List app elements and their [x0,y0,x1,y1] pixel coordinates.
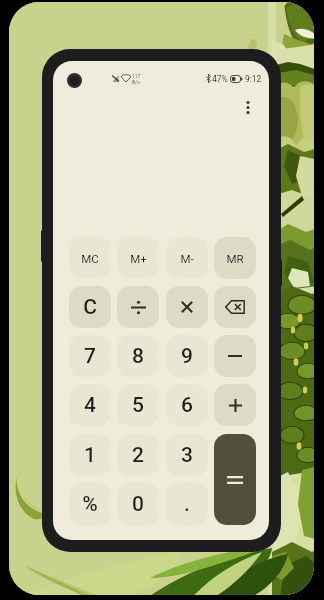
button[interactable]: % [69,483,111,525]
button[interactable]: MC [69,237,111,279]
button[interactable]: Backspace [214,286,256,328]
staticText: 117 [132,73,141,79]
staticText: 1 [84,443,96,468]
staticText: 47% [212,74,228,84]
button[interactable]: . [166,483,208,525]
staticText: 0 [132,492,144,517]
button[interactable]: 6 [166,384,208,426]
staticText: 8 [132,344,144,369]
staticText: 6 [181,393,193,418]
button[interactable]: 7 [69,335,111,377]
staticText: MC [81,252,99,265]
button[interactable]: 5 [117,384,159,426]
staticText: C [83,295,97,320]
staticText: B/s [132,79,140,85]
button[interactable]: 4 [69,384,111,426]
button[interactable]: 3 [166,434,208,476]
button[interactable] [214,335,256,377]
button[interactable]: C [69,286,111,328]
staticText: % [82,492,98,517]
button[interactable]: 1 [69,434,111,476]
button[interactable]: 2 [117,434,159,476]
staticText: 3 [181,443,193,468]
staticText: 5 [132,393,144,418]
staticText: 2 [132,443,144,468]
button[interactable] [214,434,256,525]
staticText: 9:12 [245,74,262,84]
button[interactable]: More options [239,96,257,118]
staticText: 7 [84,344,96,369]
button[interactable]: MR [214,237,256,279]
button[interactable] [117,286,159,328]
staticText: MR [226,252,244,265]
staticText: M+ [130,252,147,265]
button[interactable]: M- [166,237,208,279]
button[interactable] [166,286,208,328]
staticText: . [184,492,190,517]
button[interactable] [214,384,256,426]
button[interactable]: 9 [166,335,208,377]
button[interactable]: 0 [117,483,159,525]
staticText: M- [180,252,194,265]
button[interactable]: 8 [117,335,159,377]
button[interactable]: M+ [117,237,159,279]
staticText: 9 [181,344,193,369]
staticText: 4 [84,393,96,418]
